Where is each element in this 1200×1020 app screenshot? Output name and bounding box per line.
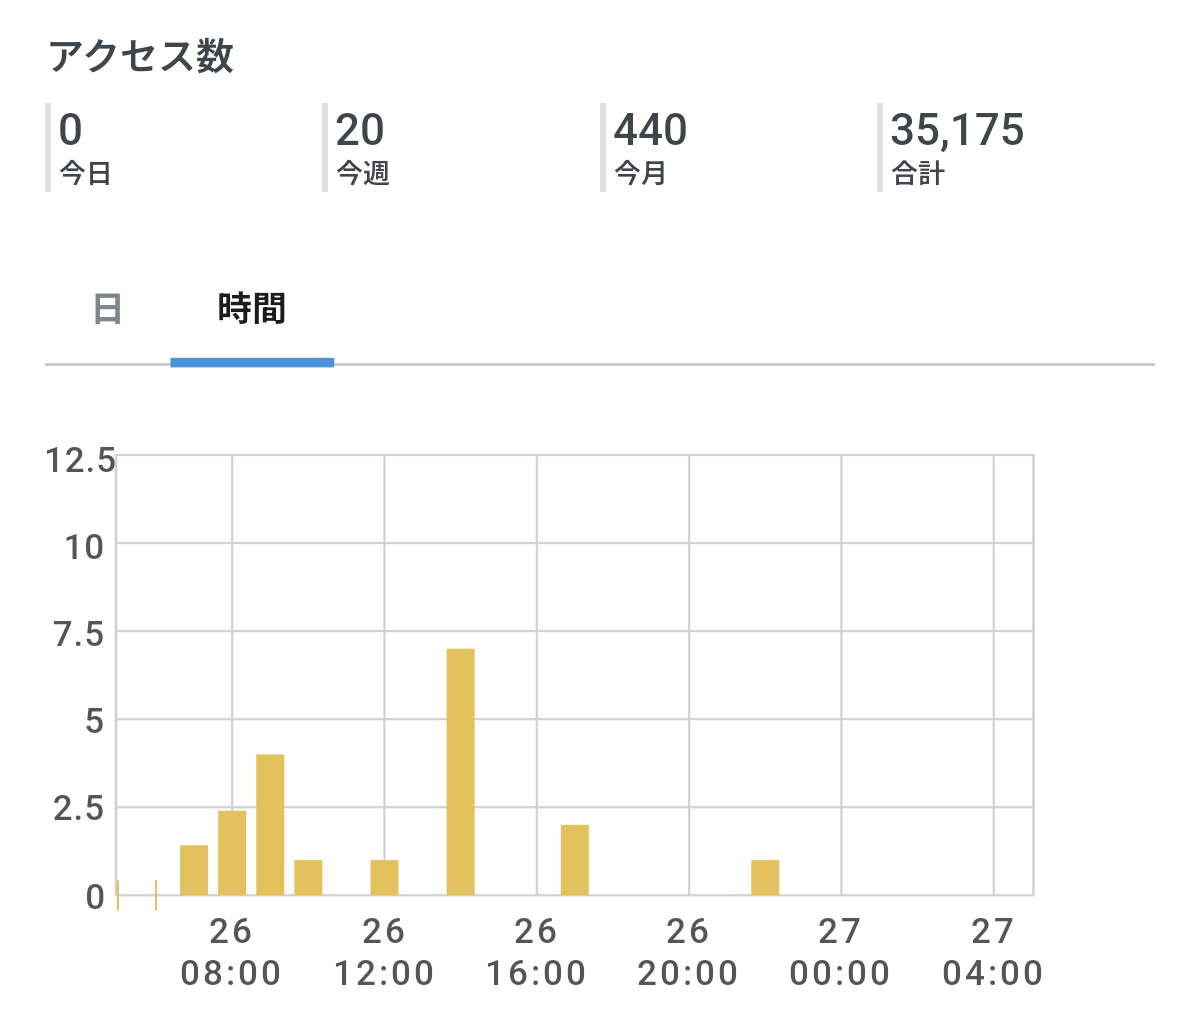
staticText: 0 [58,104,84,156]
button[interactable]: 時間 [170,280,335,360]
button[interactable]: 日 [45,280,170,360]
staticText: 20 [335,104,386,156]
staticText: 合計 [891,152,945,191]
staticText: 26 12:00 [333,911,437,994]
staticText: 7.5 [52,614,105,655]
button[interactable]: 20 [322,103,562,193]
staticText: 今月 [614,152,668,191]
staticText: 時間 [217,280,288,331]
staticText: 26 20:00 [637,911,741,994]
staticText: 27 04:00 [942,911,1046,994]
button[interactable]: 0 [45,103,285,193]
staticText: 0 [85,877,106,918]
staticText: アクセス数 [46,26,235,81]
staticText: 440 [613,104,689,156]
staticText: 35,175 [890,104,1025,156]
staticText: 12.5 [43,440,117,481]
button[interactable]: 35,175 [877,103,1117,193]
staticText: 27 00:00 [789,911,893,994]
staticText: 今週 [336,152,390,191]
other: Hourly access count bar chart [0,0,1200,1020]
staticText: 2.5 [52,788,105,829]
staticText: 26 08:00 [180,911,284,994]
staticText: 26 16:00 [485,911,589,994]
staticText: 日 [90,280,126,331]
button[interactable]: 440 [600,103,840,193]
staticText: 今日 [59,152,113,191]
staticText: 5 [84,701,105,742]
staticText: 10 [63,527,105,568]
